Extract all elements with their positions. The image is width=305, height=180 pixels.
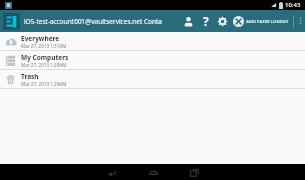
- button[interactable]: My Computers: [0, 51, 305, 69]
- staticText: iOS-test-account001@vaultservices.net Co…: [24, 17, 180, 26]
- button[interactable]: More options: [296, 10, 305, 32]
- button[interactable]: Recents: [186, 164, 202, 180]
- button[interactable]: SAIU FAZER LOGOUT: [231, 16, 291, 27]
- button[interactable]: Back: [104, 164, 120, 180]
- button[interactable]: Settings: [214, 10, 231, 32]
- staticText: My Computers: [21, 53, 69, 62]
- staticText: Trash: [21, 72, 39, 81]
- button[interactable]: Trash: [0, 70, 305, 88]
- button[interactable]: Account: [180, 10, 197, 32]
- staticText: 10:43: [285, 1, 301, 9]
- staticText: ?: [203, 13, 209, 29]
- staticText: Mar 27, 2013 1:29AM: [21, 81, 67, 87]
- button[interactable]: App logo: [3, 13, 20, 30]
- staticText: Mar 27, 2013 1:31AM: [21, 43, 67, 49]
- staticText: Everywhere: [21, 34, 60, 43]
- button[interactable]: Help: [197, 10, 214, 32]
- staticText: SAIU FAZER LOGOUT: [246, 19, 289, 25]
- button[interactable]: Home: [145, 164, 161, 180]
- staticText: Mar 27, 2013 1:29AM: [21, 62, 67, 68]
- button[interactable]: Everywhere: [0, 32, 305, 50]
